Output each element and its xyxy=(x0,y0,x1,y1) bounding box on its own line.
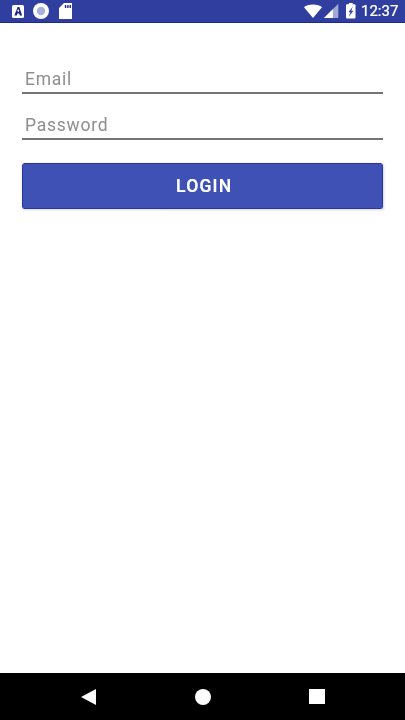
staticText: 12:37 xyxy=(361,2,399,20)
button[interactable]: Email xyxy=(22,68,383,94)
button[interactable]: Recent apps xyxy=(260,673,374,720)
staticText: Password xyxy=(25,115,109,136)
button[interactable]: Back xyxy=(31,673,145,720)
button[interactable]: Home xyxy=(145,673,260,720)
button[interactable]: Password xyxy=(22,114,383,140)
button[interactable]: LOGIN xyxy=(22,163,383,209)
staticText: Email xyxy=(25,69,73,90)
staticText: LOGIN xyxy=(176,176,233,197)
